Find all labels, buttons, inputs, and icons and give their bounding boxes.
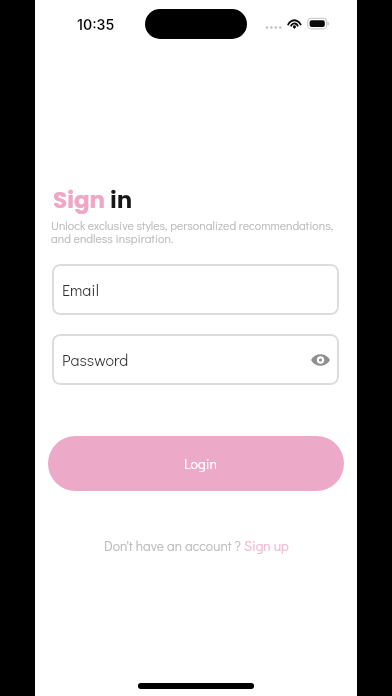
staticText: Sign in [53, 184, 133, 216]
button[interactable]: Show password [309, 349, 331, 371]
button[interactable]: Password [52, 334, 339, 385]
staticText: Login [184, 454, 217, 472]
button[interactable]: Sign up [244, 537, 289, 555]
button[interactable]: Email [52, 264, 339, 315]
staticText: Password [62, 349, 129, 370]
staticText: Sign up [244, 537, 289, 555]
button[interactable]: Login [48, 436, 344, 491]
staticText: Unlock exclusive styles, personalized re… [51, 217, 341, 247]
staticText: 10:35 [77, 16, 115, 33]
staticText: Don't have an account ? [104, 537, 244, 555]
staticText: Email [62, 279, 99, 300]
